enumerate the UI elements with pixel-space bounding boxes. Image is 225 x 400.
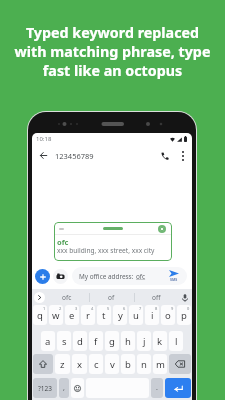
- button[interactable]: ,: [59, 378, 69, 398]
- button[interactable]: h: [121, 331, 135, 351]
- staticText: 3: [75, 306, 78, 311]
- button[interactable]: y: [113, 305, 127, 325]
- button[interactable]: o: [161, 305, 175, 325]
- button[interactable]: off: [134, 289, 179, 305]
- staticText: m: [156, 358, 165, 371]
- button[interactable]: More suggestions: [34, 292, 45, 303]
- button[interactable]: m: [153, 354, 167, 374]
- button[interactable]: Call: [157, 148, 172, 163]
- button[interactable]: l: [169, 331, 183, 351]
- staticText: k: [157, 335, 163, 348]
- button[interactable]: r: [81, 305, 95, 325]
- staticText: 10:18: [36, 135, 52, 143]
- button[interactable]: My office address:: [72, 267, 187, 285]
- staticText: ofc: [57, 237, 69, 247]
- button[interactable]: j: [137, 331, 151, 351]
- button[interactable]: Camera: [53, 269, 68, 284]
- staticText: 9: [171, 306, 174, 311]
- staticText: .: [156, 383, 158, 393]
- staticText: r: [86, 309, 90, 322]
- staticText: 1: [43, 306, 46, 311]
- staticText: My office address:: [79, 272, 136, 281]
- button[interactable]: k: [153, 331, 167, 351]
- button[interactable]: c: [89, 354, 103, 374]
- staticText: a: [45, 335, 51, 348]
- staticText: Typed keyword replaced with matching phr…: [3, 23, 222, 80]
- staticText: 5: [107, 306, 110, 311]
- staticText: p: [181, 309, 187, 322]
- staticText: j: [143, 335, 146, 348]
- staticText: i: [151, 309, 154, 322]
- button[interactable]: t: [97, 305, 111, 325]
- staticText: x: [77, 358, 83, 371]
- button[interactable]: q: [33, 305, 47, 325]
- button[interactable]: Close suggestion: [54, 222, 172, 261]
- button[interactable]: ofc: [45, 289, 89, 305]
- staticText: 0: [187, 306, 190, 311]
- staticText: u: [133, 309, 139, 322]
- button[interactable]: Add attachment: [35, 269, 50, 284]
- staticText: w: [52, 309, 60, 322]
- button[interactable]: Shift: [33, 354, 53, 374]
- staticText: SMS: [170, 277, 178, 282]
- staticText: xxx building, xxx street, xxx city: [57, 246, 155, 255]
- button[interactable]: ?123: [33, 378, 57, 398]
- button[interactable]: w: [49, 305, 63, 325]
- staticText: ?123: [38, 384, 52, 393]
- button[interactable]: n: [137, 354, 151, 374]
- button[interactable]: Emoji: [71, 378, 84, 398]
- button[interactable]: Backspace: [169, 354, 191, 374]
- button[interactable]: s: [57, 331, 71, 351]
- button[interactable]: b: [121, 354, 135, 374]
- staticText: y: [118, 309, 123, 322]
- button[interactable]: Close suggestion: [158, 225, 166, 233]
- staticText: h: [125, 335, 131, 348]
- staticText: d: [77, 335, 83, 348]
- button[interactable]: a: [41, 331, 55, 351]
- staticText: 2: [59, 306, 62, 311]
- button[interactable]: Enter: [165, 378, 191, 398]
- button[interactable]: x: [72, 354, 87, 374]
- staticText: of: [108, 293, 115, 302]
- button[interactable]: of: [89, 289, 134, 305]
- staticText: t: [102, 309, 106, 322]
- staticText: z: [60, 358, 65, 371]
- staticText: s: [62, 335, 67, 348]
- staticText: c: [94, 358, 99, 371]
- button[interactable]: Back: [36, 148, 51, 163]
- staticText: g: [109, 335, 115, 348]
- staticText: 4: [91, 306, 94, 311]
- staticText: o: [165, 309, 171, 322]
- staticText: b: [125, 358, 131, 371]
- staticText: 123456789: [55, 151, 94, 161]
- staticText: 8: [155, 306, 158, 311]
- staticText: ofc: [62, 293, 72, 302]
- staticText: ,: [63, 383, 65, 393]
- button[interactable]: u: [129, 305, 143, 325]
- staticText: l: [175, 335, 178, 348]
- button[interactable]: d: [73, 331, 87, 351]
- button[interactable]: .: [151, 378, 163, 398]
- button[interactable]: More options: [176, 149, 189, 162]
- staticText: 7: [139, 306, 142, 311]
- button[interactable]: v: [105, 354, 119, 374]
- staticText: 6: [123, 306, 126, 311]
- button[interactable]: e: [65, 305, 79, 325]
- staticText: n: [141, 358, 147, 371]
- staticText: f: [94, 335, 98, 348]
- button[interactable]: f: [89, 331, 103, 351]
- staticText: q: [37, 309, 43, 322]
- button[interactable]: Send SMS: [166, 270, 182, 282]
- button[interactable]: z: [55, 354, 70, 374]
- button[interactable]: i: [145, 305, 159, 325]
- button[interactable]: g: [105, 331, 119, 351]
- staticText: v: [110, 358, 115, 371]
- button[interactable]: p: [177, 305, 191, 325]
- staticText: off: [152, 293, 161, 302]
- button[interactable]: Voice input: [179, 292, 190, 303]
- staticText: ofc: [136, 272, 146, 281]
- staticText: e: [69, 309, 75, 322]
